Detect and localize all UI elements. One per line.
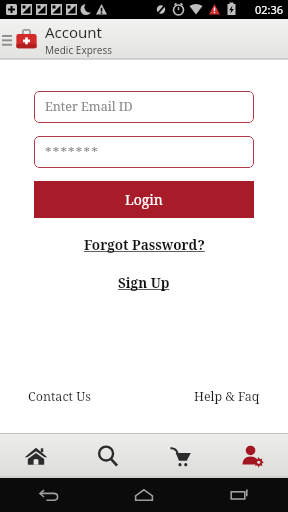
button[interactable]: Sign Up — [112, 272, 176, 294]
button[interactable]: Help & Faq — [192, 386, 262, 407]
button[interactable]: Search — [72, 433, 144, 478]
button[interactable]: Contact Us — [26, 386, 93, 407]
button[interactable]: Back — [0, 478, 96, 512]
staticText: Medic Express — [45, 43, 112, 57]
button[interactable]: Home — [0, 433, 72, 478]
button[interactable]: Account settings — [216, 433, 288, 478]
staticText: Contact Us — [28, 388, 91, 405]
staticText: Help & Faq — [194, 388, 260, 405]
staticText: Account — [45, 22, 103, 42]
staticText: Sign Up — [118, 274, 170, 292]
staticText: Enter Email ID — [45, 98, 133, 115]
staticText: Forgot Password? — [84, 236, 205, 254]
button[interactable]: Open navigation menu — [0, 19, 13, 60]
button[interactable]: Login — [34, 181, 254, 218]
button[interactable]: Medic Express logo — [13, 26, 40, 53]
staticText: 02:36 — [255, 2, 284, 17]
staticText: Login — [125, 190, 163, 209]
button[interactable]: Recent apps — [192, 478, 288, 512]
button[interactable]: Cart — [144, 433, 216, 478]
button[interactable]: Enter Email ID — [34, 91, 254, 123]
staticText: ******* — [45, 143, 99, 161]
button[interactable]: Forgot Password? — [78, 234, 211, 256]
button[interactable]: Home — [96, 478, 192, 512]
button[interactable]: ******* — [34, 136, 254, 168]
